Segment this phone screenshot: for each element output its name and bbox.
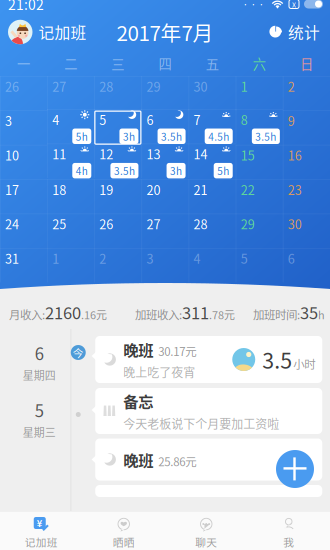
button[interactable]: 17 <box>0 179 47 214</box>
staticText: 29 <box>241 215 255 233</box>
staticText: 晒晒 <box>113 534 135 549</box>
button[interactable]: 1 <box>236 76 283 110</box>
button[interactable]: 30 <box>189 76 236 110</box>
staticText: 2 <box>288 77 295 95</box>
staticText: 晚班 <box>123 338 153 360</box>
staticText: 记加班 <box>25 534 58 549</box>
staticText: 小时 <box>293 355 315 372</box>
staticText: 月收入: <box>9 306 45 322</box>
button[interactable]: 24 <box>0 214 47 248</box>
button[interactable]: 6 <box>283 248 330 282</box>
button[interactable]: 晚班 <box>91 336 322 383</box>
button[interactable]: 聊天 <box>165 511 247 550</box>
staticText: 16 <box>288 146 302 164</box>
staticText: 今 <box>73 345 84 360</box>
button[interactable]: 7 <box>189 110 236 145</box>
button[interactable]: 21 <box>189 179 236 214</box>
button[interactable]: Add record <box>276 450 314 488</box>
button[interactable]: 25 <box>47 214 94 248</box>
staticText: 23 <box>288 180 302 198</box>
button[interactable]: 晚班 <box>91 438 322 480</box>
button[interactable]: 30 <box>283 214 330 248</box>
staticText: 21 <box>194 180 208 198</box>
staticText: 4h <box>76 163 88 178</box>
staticText: 日 <box>300 54 313 73</box>
button[interactable]: 12 <box>94 145 141 179</box>
staticText: 1 <box>52 249 59 267</box>
button[interactable]: 19 <box>94 179 141 214</box>
staticText: 备忘 <box>123 390 153 412</box>
staticText: 晚班 <box>123 448 153 471</box>
staticText: 14 <box>194 145 208 163</box>
staticText: 9 <box>288 111 295 130</box>
button[interactable]: 4 <box>47 110 94 145</box>
staticText: 30 <box>288 215 302 233</box>
button[interactable]: 26 <box>94 214 141 248</box>
staticText: 31 <box>5 249 19 267</box>
button[interactable]: 29 <box>236 214 283 248</box>
button[interactable]: 27 <box>141 214 188 248</box>
staticText: 29 <box>146 77 160 95</box>
staticText: 4 <box>52 110 59 128</box>
button[interactable]: 28 <box>189 214 236 248</box>
button[interactable]: 9 <box>283 110 330 145</box>
staticText: 3.5h <box>114 163 135 178</box>
button[interactable]: 27 <box>47 76 94 110</box>
staticText: 记加班 <box>38 21 86 43</box>
staticText: 27 <box>52 77 66 95</box>
staticText: 8 <box>241 110 248 128</box>
button[interactable]: 5 <box>94 110 141 145</box>
button[interactable]: 20 <box>141 179 188 214</box>
staticText: 三 <box>111 54 124 73</box>
button[interactable]: 10 <box>0 145 47 179</box>
staticText: 5 <box>99 110 106 128</box>
button[interactable]: 备忘 <box>91 388 322 434</box>
button[interactable]: 11 <box>47 145 94 179</box>
button[interactable]: 统计 <box>269 15 320 49</box>
staticText: 统计 <box>288 21 320 43</box>
button[interactable]: 我 <box>247 511 330 550</box>
staticText: 3 <box>146 249 153 267</box>
staticText: 35 <box>300 300 318 324</box>
staticText: 26 <box>5 77 19 95</box>
button[interactable]: ¥ <box>0 511 82 550</box>
button[interactable]: 8 <box>236 110 283 145</box>
button[interactable]: 22 <box>236 179 283 214</box>
staticText: 28 <box>194 215 208 233</box>
button[interactable]: 记加班 <box>8 17 86 47</box>
button[interactable]: 3 <box>0 110 47 145</box>
button[interactable]: 14 <box>189 145 236 179</box>
button[interactable]: 16 <box>283 145 330 179</box>
button[interactable]: 4 <box>189 248 236 282</box>
button[interactable]: 26 <box>0 76 47 110</box>
staticText: 2160 <box>45 300 81 324</box>
button[interactable]: 1 <box>47 248 94 282</box>
button[interactable]: 31 <box>0 248 47 282</box>
button[interactable]: 29 <box>141 76 188 110</box>
staticText: 18 <box>52 180 66 198</box>
staticText: 晚上吃了夜宵 <box>123 363 195 381</box>
button[interactable]: 18 <box>47 179 94 214</box>
staticText: .16元 <box>81 306 107 322</box>
staticText: 15 <box>241 146 255 164</box>
staticText: 聊天 <box>195 534 217 549</box>
staticText: 星期三 <box>23 424 56 440</box>
button[interactable]: 2 <box>94 248 141 282</box>
button[interactable]: 3 <box>141 248 188 282</box>
button[interactable]: 6 <box>141 110 188 145</box>
button[interactable]: 15 <box>236 145 283 179</box>
staticText: ¥ <box>37 516 43 530</box>
staticText: .78元 <box>209 306 235 322</box>
button[interactable]: 13 <box>141 145 188 179</box>
staticText: 12 <box>99 145 113 163</box>
button[interactable]: 2 <box>283 76 330 110</box>
staticText: 3.5h <box>161 129 182 143</box>
staticText: 7 <box>194 110 201 128</box>
staticText: 17 <box>5 180 19 198</box>
staticText: 6 <box>288 249 295 267</box>
button[interactable]: 23 <box>283 179 330 214</box>
button[interactable]: 28 <box>94 76 141 110</box>
staticText: 13 <box>146 145 160 163</box>
button[interactable]: 晒晒 <box>82 511 165 550</box>
button[interactable]: 5 <box>236 248 283 282</box>
